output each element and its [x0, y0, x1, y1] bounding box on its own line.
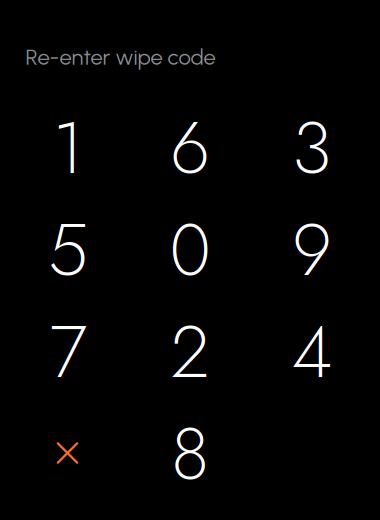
staticText: 0 — [169, 198, 210, 302]
button[interactable]: 4 — [256, 304, 368, 400]
staticText: 1 — [52, 96, 83, 200]
staticText: 5 — [48, 198, 88, 302]
staticText: 3 — [292, 96, 332, 200]
staticText: 6 — [170, 96, 210, 200]
staticText: 8 — [171, 402, 209, 506]
staticText: 7 — [49, 300, 86, 404]
button[interactable]: 0 — [134, 202, 246, 298]
button[interactable]: 8 — [134, 406, 246, 502]
button[interactable]: 2 — [134, 304, 246, 400]
button[interactable]: 9 — [256, 202, 368, 298]
button[interactable]: 6 — [134, 100, 246, 196]
button[interactable]: 5 — [12, 202, 124, 298]
staticText: 9 — [292, 198, 332, 302]
staticText: Re-enter wipe code — [25, 44, 215, 70]
button[interactable]: Delete — [11, 405, 123, 501]
staticText: 4 — [291, 300, 332, 404]
button[interactable]: 3 — [256, 100, 368, 196]
button[interactable]: 1 — [12, 100, 124, 196]
button[interactable]: 7 — [12, 304, 124, 400]
staticText: 2 — [170, 300, 209, 404]
